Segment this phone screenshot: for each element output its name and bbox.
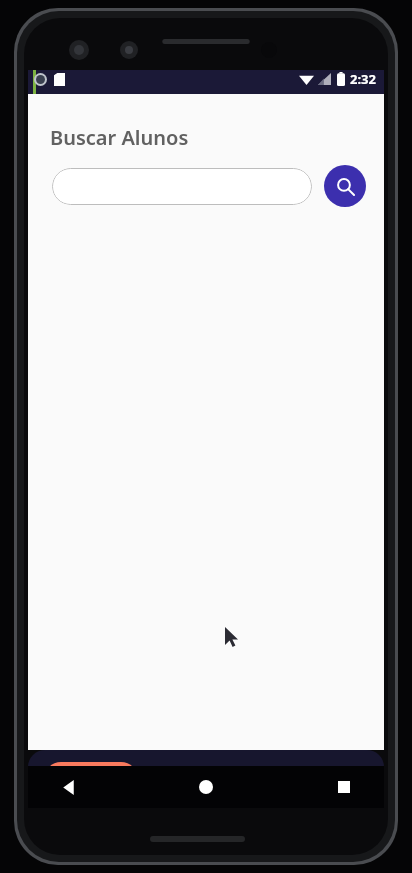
button[interactable]: Home: [184, 766, 228, 808]
button[interactable]: Buscar: [324, 165, 366, 207]
button[interactable]: Recents: [322, 766, 366, 808]
button[interactable]: Alunos: [168, 756, 214, 802]
staticText: Buscar Alunos: [50, 124, 189, 151]
button[interactable]: Back: [46, 766, 90, 808]
button[interactable]: Editar: [243, 756, 289, 802]
button[interactable]: [52, 168, 312, 205]
button[interactable]: Excluir: [318, 756, 364, 802]
button[interactable]: Buscar: [44, 762, 138, 796]
staticText: 2:32: [350, 70, 376, 88]
